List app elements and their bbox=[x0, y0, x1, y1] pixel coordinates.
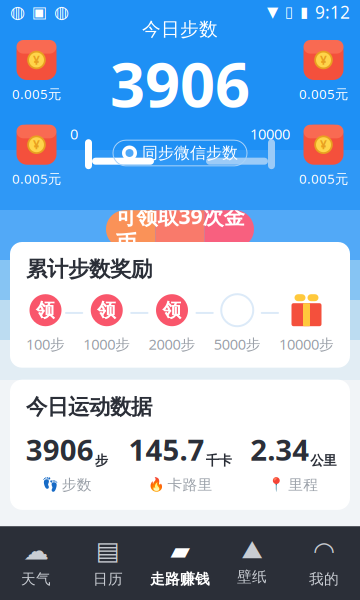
staticText: ▼ bbox=[267, 4, 278, 20]
staticText: ¥ bbox=[320, 52, 327, 68]
staticText: 100步 bbox=[26, 334, 65, 354]
staticText: 0.005元 bbox=[299, 85, 348, 103]
staticText: ◍ bbox=[10, 2, 25, 22]
button[interactable]: 领取红包 0.005元 bbox=[299, 125, 348, 187]
staticText: 卡路里 bbox=[167, 476, 212, 494]
staticText: 我的 bbox=[309, 570, 339, 588]
staticText: 1000步 bbox=[83, 334, 130, 354]
staticText: 今日步数 bbox=[142, 18, 218, 41]
staticText: 壁纸 bbox=[237, 568, 267, 586]
staticText: ▣ bbox=[32, 3, 47, 21]
staticText: 走路赚钱 bbox=[150, 570, 210, 588]
staticText: 里程 bbox=[288, 476, 318, 494]
staticText: 👣 bbox=[42, 477, 59, 492]
staticText: 天气 bbox=[21, 570, 51, 588]
button[interactable]: ▰ bbox=[144, 530, 216, 594]
staticText: 0.005元 bbox=[299, 170, 348, 187]
staticText: 千卡 bbox=[205, 452, 231, 469]
button[interactable]: ▤ bbox=[72, 530, 144, 594]
staticText: ☁ bbox=[23, 536, 48, 565]
staticText: 2000步 bbox=[148, 334, 195, 354]
button[interactable]: ☁ bbox=[0, 530, 72, 594]
staticText: ¥ bbox=[320, 137, 327, 153]
staticText: ▰ bbox=[170, 536, 189, 565]
staticText: 领 bbox=[97, 299, 116, 322]
staticText: 9:12 bbox=[315, 0, 350, 23]
staticText: 2.34 bbox=[250, 430, 309, 469]
staticText: ▤ bbox=[96, 536, 120, 565]
staticText: 日历 bbox=[93, 570, 123, 588]
staticText: 🔥 bbox=[147, 477, 164, 492]
staticText: 3906 bbox=[110, 43, 250, 124]
staticText: 3906 bbox=[26, 430, 94, 469]
button[interactable]: ◠ bbox=[288, 530, 360, 594]
button[interactable]: 可领取39次金币 bbox=[106, 210, 254, 248]
staticText: 今日运动数据 bbox=[26, 394, 152, 420]
staticText: 📍 bbox=[268, 477, 285, 492]
staticText: 领 bbox=[36, 299, 55, 322]
button[interactable]: 同步微信步数 bbox=[113, 140, 247, 166]
staticText: 领 bbox=[162, 299, 181, 322]
staticText: 10000步 bbox=[279, 334, 334, 354]
staticText: 步数 bbox=[62, 476, 92, 494]
button[interactable]: ⛰ bbox=[216, 532, 288, 592]
staticText: 0 bbox=[70, 124, 78, 144]
button[interactable]: 领取红包 0.005元 bbox=[299, 40, 348, 103]
staticText: ◍ bbox=[54, 2, 69, 22]
button[interactable]: 领取红包 0.005元 bbox=[12, 125, 61, 187]
staticText: ▯ bbox=[285, 4, 293, 20]
staticText: 5000步 bbox=[214, 334, 261, 354]
staticText: ¥ bbox=[33, 52, 40, 68]
staticText: 可领取39次金币 bbox=[115, 202, 244, 256]
staticText: ◠ bbox=[313, 536, 335, 565]
staticText: 同步微信步数 bbox=[142, 143, 238, 163]
staticText: 10000 bbox=[250, 124, 290, 144]
staticText: ⛰ bbox=[241, 538, 262, 563]
staticText: 步 bbox=[95, 452, 108, 469]
staticText: 0.005元 bbox=[12, 170, 61, 187]
button[interactable]: 领取红包 0.005元 bbox=[12, 40, 61, 103]
staticText: 145.7 bbox=[128, 430, 204, 469]
staticText: 公里 bbox=[310, 452, 336, 469]
staticText: 0.005元 bbox=[12, 85, 61, 103]
staticText: 累计步数奖励 bbox=[26, 256, 152, 282]
staticText: ¥ bbox=[33, 137, 40, 153]
staticText: ▮ bbox=[300, 4, 308, 20]
